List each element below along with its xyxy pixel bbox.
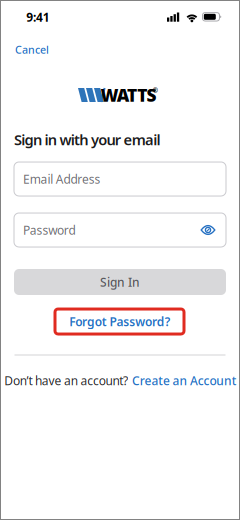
staticText: ® [152,86,158,95]
button[interactable]: Sign In [14,269,226,295]
button[interactable]: Cancel [15,42,49,57]
staticText: Create an Account [132,372,237,388]
staticText: Cancel [15,42,49,57]
staticText: Sign In [100,274,140,290]
staticText: Password [23,222,76,238]
staticText: Email Address [23,171,101,187]
button[interactable]: Email Address [14,162,226,196]
staticText: 9:41 [26,9,50,25]
staticText: WATTS [100,83,157,106]
button[interactable]: Create an Account [132,372,237,388]
staticText: Forgot Password? [69,313,171,329]
button[interactable]: Password [14,213,226,247]
button[interactable]: Forgot Password? [69,313,171,329]
staticText: Don’t have an account? [4,372,128,388]
staticText: Sign in with your email [14,130,161,149]
button[interactable]: Show password [200,223,216,237]
